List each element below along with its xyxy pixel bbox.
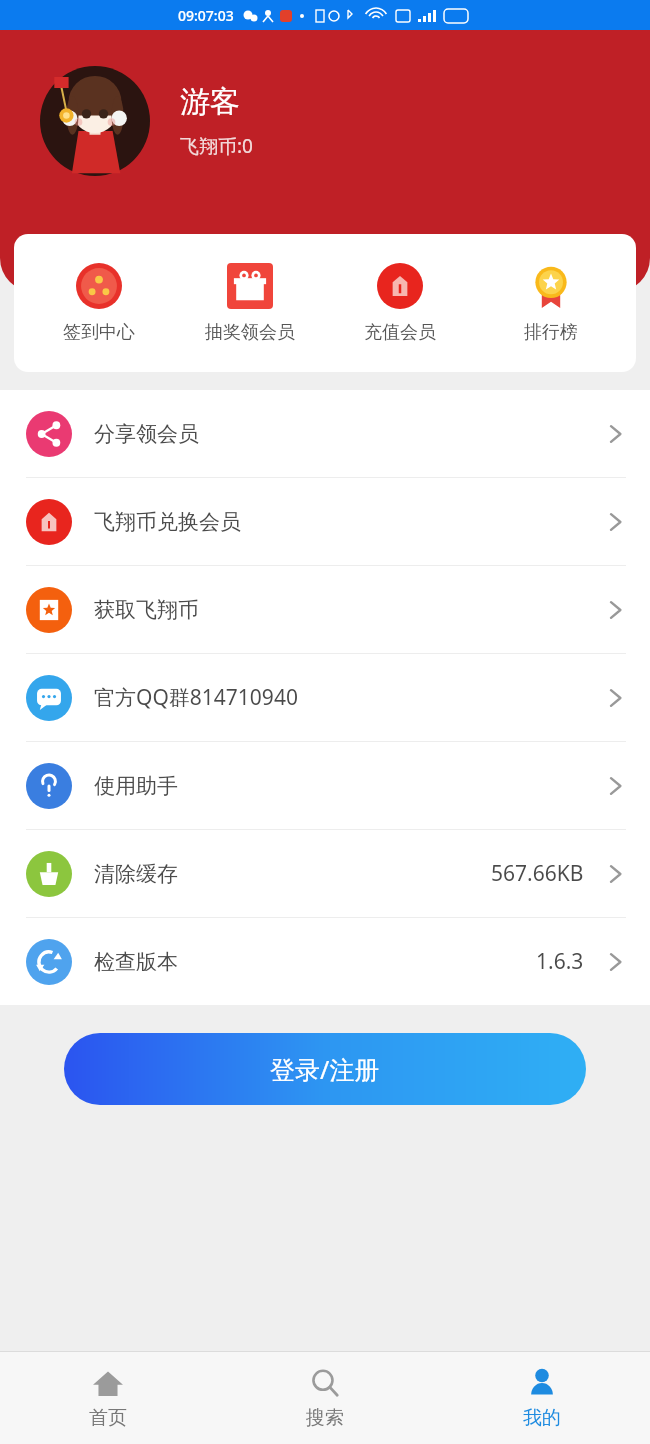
button[interactable]: 获取飞翔币	[0, 566, 650, 653]
staticText: 首页	[89, 1406, 127, 1430]
button[interactable]: 首页	[0, 1352, 216, 1444]
button[interactable]: 签到中心	[34, 255, 164, 352]
button[interactable]: 飞翔币兑换会员	[0, 478, 650, 565]
staticText: 游客	[180, 83, 240, 121]
button[interactable]: 我的	[433, 1352, 650, 1444]
button[interactable]: 排行榜	[486, 255, 616, 352]
button[interactable]: 搜索	[216, 1352, 433, 1444]
button[interactable]: 抽奖领会员	[185, 255, 315, 352]
staticText: 09:07:03	[178, 6, 234, 25]
button[interactable]: 充值会员	[335, 255, 465, 352]
staticText: 搜索	[306, 1406, 344, 1430]
staticText: 签到中心	[63, 321, 135, 344]
staticText: 飞翔币兑换会员	[94, 509, 241, 535]
staticText: 抽奖领会员	[205, 321, 295, 344]
staticText: 飞翔币:0	[180, 133, 253, 159]
staticText: 分享领会员	[94, 421, 199, 447]
staticText: 我的	[523, 1406, 561, 1430]
button[interactable]: 分享领会员	[0, 390, 650, 477]
staticText: 检查版本	[94, 949, 178, 975]
staticText: 使用助手	[94, 773, 178, 799]
staticText: 获取飞翔币	[94, 597, 199, 623]
staticText: 排行榜	[524, 321, 578, 344]
staticText: 官方QQ群814710940	[94, 683, 298, 712]
staticText: 1.6.3	[536, 947, 584, 976]
staticText: 567.66KB	[491, 859, 584, 888]
button[interactable]: 官方QQ群814710940	[0, 654, 650, 741]
button[interactable]: 登录/注册	[64, 1033, 586, 1105]
staticText: 清除缓存	[94, 861, 178, 887]
staticText: 登录/注册	[270, 1052, 380, 1086]
button[interactable]: 使用助手	[0, 742, 650, 829]
button[interactable]: 游客	[40, 66, 253, 176]
button[interactable]: 检查版本	[0, 918, 650, 1005]
staticText: 充值会员	[364, 321, 436, 344]
button[interactable]: 清除缓存	[0, 830, 650, 917]
